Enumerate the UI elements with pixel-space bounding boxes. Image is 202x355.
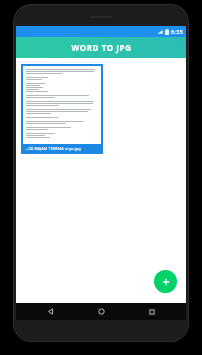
button[interactable]: Back bbox=[33, 303, 67, 320]
button[interactable]: ...ZA NAJAM TEREMA ergo.jpg bbox=[21, 64, 103, 154]
button[interactable]: Recent apps bbox=[135, 303, 169, 320]
staticText: ...ZA NAJAM TEREMA ergo.jpg bbox=[25, 146, 81, 151]
staticText: WORD TO JPG bbox=[71, 42, 132, 53]
button[interactable]: Add bbox=[154, 270, 177, 293]
staticText: 6:35 bbox=[171, 28, 183, 36]
button[interactable]: Home bbox=[84, 303, 118, 320]
